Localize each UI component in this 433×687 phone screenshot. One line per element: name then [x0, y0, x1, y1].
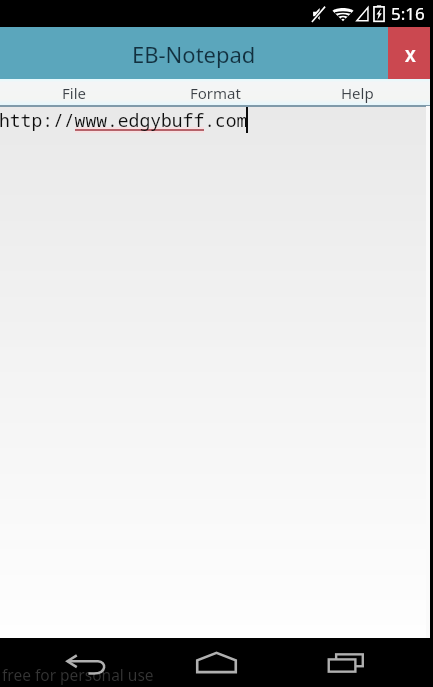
staticText: 5:16 [391, 2, 425, 25]
button[interactable]: File [3, 79, 144, 105]
button[interactable]: EB-Notepad [0, 27, 388, 79]
staticText: EB-Notepad [132, 39, 256, 69]
staticText: http://www.edgybuff.com [0, 108, 248, 133]
staticText: X [405, 45, 416, 67]
staticText: free for personal use [2, 664, 154, 685]
staticText: Format [190, 83, 241, 103]
button[interactable]: Back [58, 648, 114, 681]
staticText: Help [341, 83, 374, 103]
staticText: File [62, 83, 86, 103]
button[interactable]: Recents [318, 646, 374, 679]
button[interactable]: Close [388, 27, 433, 79]
button[interactable]: Help [286, 79, 428, 105]
button[interactable]: Format [144, 79, 286, 105]
button[interactable]: Home [188, 646, 244, 679]
